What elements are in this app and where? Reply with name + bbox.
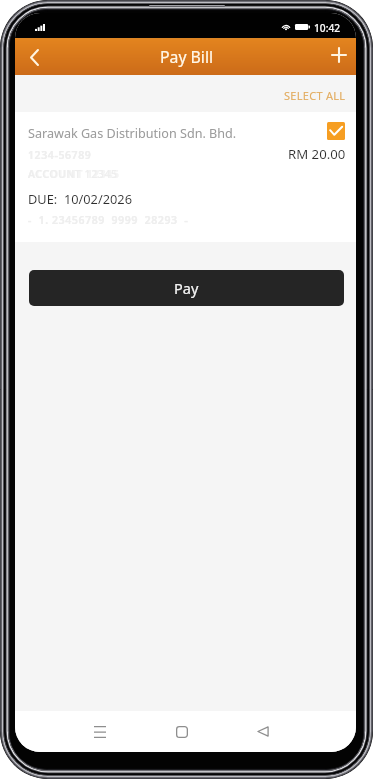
staticText: 1234-56789 [28,148,92,162]
button[interactable]: Back [243,711,283,752]
button[interactable]: Pay [29,270,344,306]
staticText: 10:42 [314,21,341,35]
staticText: DUE: 10/02/2026 [28,190,132,207]
staticText: ACCOUNT 12345 [28,167,118,181]
staticText: - 1. 23456789 9999 28293 - [28,213,189,227]
button[interactable]: Recent apps [80,711,120,752]
button[interactable]: Add bill [318,38,356,75]
button[interactable]: Sarawak Gas Distribution Sdn. Bhd. [15,112,356,242]
staticText: Sarawak Gas Distribution Sdn. Bhd. [28,125,237,142]
staticText: Pay Bill [160,46,214,68]
staticText: 1234-56789 [28,148,92,162]
button[interactable]: Back [15,38,53,75]
staticText: Pay [174,278,199,298]
button[interactable]: Home [162,711,202,752]
staticText: RM 20.00 [288,145,346,163]
button[interactable]: SELECT ALL [275,80,356,111]
staticText: SELECT ALL [284,88,346,103]
button[interactable]: Bill selected [327,122,345,140]
staticText: ACCOUNT 12345 [28,167,120,181]
staticText: - 1. 23456789 9999 28293 - [28,213,189,227]
